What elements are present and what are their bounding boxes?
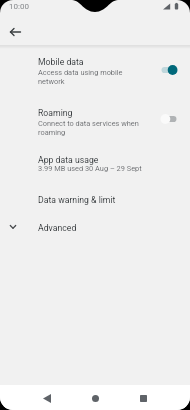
button[interactable]: Mobile data (0, 49, 190, 91)
staticText: 10:00 (9, 2, 29, 11)
staticText: Access data using mobile network (38, 68, 148, 86)
staticText: App data usage (38, 155, 99, 165)
button[interactable]: Back (37, 388, 57, 408)
button[interactable]: Advanced (0, 216, 190, 238)
staticText: Mobile data (38, 57, 84, 67)
button[interactable]: Data warning & limit (0, 188, 190, 210)
button[interactable]: Home (85, 388, 105, 408)
staticText: Data warning & limit (38, 195, 116, 205)
staticText: Connect to data services when roaming (38, 119, 148, 137)
staticText: Advanced (38, 223, 77, 233)
button[interactable]: Recent apps (133, 388, 153, 408)
staticText: Roaming (38, 108, 73, 118)
button[interactable]: Navigate up (3, 20, 27, 44)
button[interactable]: App data usage (0, 148, 190, 180)
button[interactable]: Roaming (0, 100, 190, 142)
staticText: 3.99 MB used 30 Aug – 29 Sept (38, 164, 142, 173)
